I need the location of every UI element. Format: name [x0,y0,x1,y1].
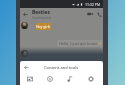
button[interactable]: Back [20,9,30,19]
staticText: Hello, I just got home [59,41,98,46]
button[interactable]: Audio [64,73,75,84]
button[interactable]: Back [22,63,30,71]
button[interactable]: Emoji [85,73,96,84]
button[interactable]: Sticker [44,73,55,84]
staticText: 11:32 PM [85,2,101,7]
staticText: Besties [32,9,50,16]
button[interactable]: Call [94,9,104,19]
staticText: 3 participants [32,16,52,20]
staticText: Content and tools [44,65,79,70]
button[interactable]: Gallery [24,73,35,84]
staticText: Hey girls [36,24,51,29]
button[interactable]: Video call [85,9,95,19]
